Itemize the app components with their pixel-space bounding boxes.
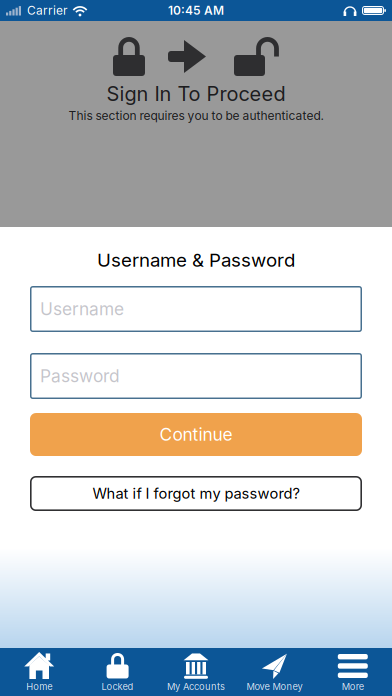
staticText: 10:45 AM [168,3,224,18]
button[interactable]: Home [0,648,78,696]
staticText: Carrier [27,3,68,18]
staticText: Username [40,299,124,319]
staticText: Locked [102,681,134,692]
staticText: Password [40,366,120,386]
staticText: Continue [159,424,232,445]
button[interactable]: What if I forgot my password? [30,476,362,511]
button[interactable]: More [314,648,392,696]
staticText: Home [26,681,52,692]
staticText: Sign In To Proceed [106,82,285,106]
button[interactable]: My Accounts [157,648,235,696]
staticText: This section requires you to be authenti… [68,109,323,123]
button[interactable]: Move Money [235,648,314,696]
staticText: What if I forgot my password? [92,485,299,502]
button[interactable]: Continue [30,413,362,456]
staticText: Username & Password [97,249,295,271]
staticText: My Accounts [167,681,225,692]
button[interactable]: Password [30,353,362,399]
staticText: More [342,681,364,692]
staticText: Move Money [246,681,302,692]
button[interactable]: Username [30,286,362,332]
button[interactable]: Locked [78,648,157,696]
